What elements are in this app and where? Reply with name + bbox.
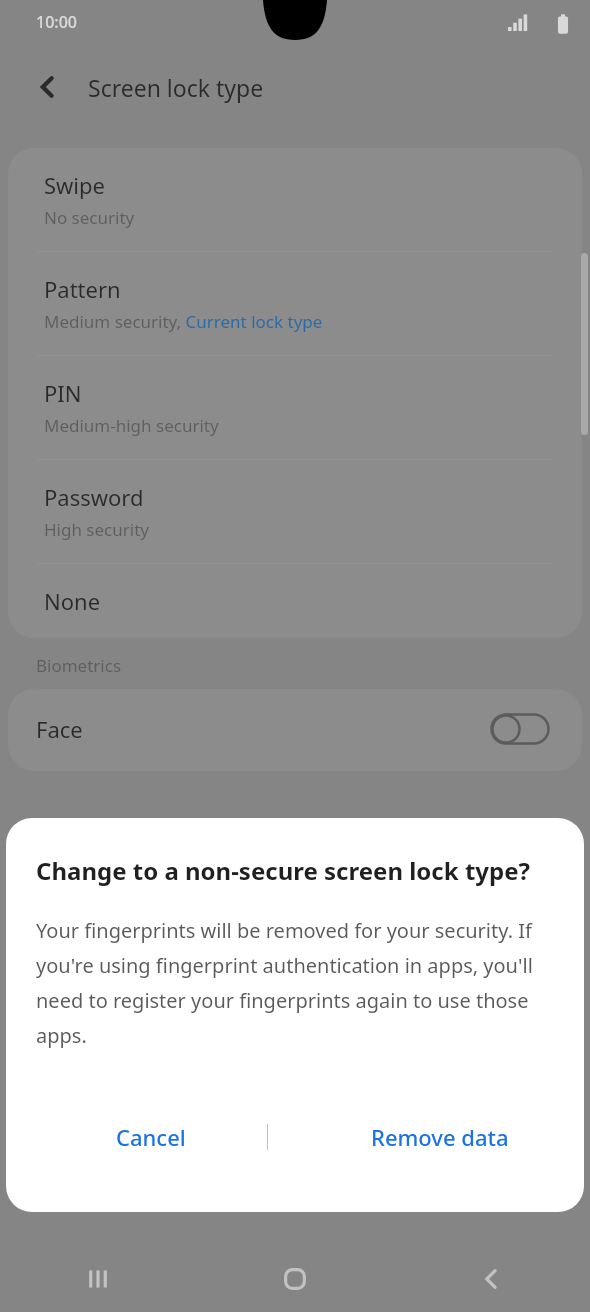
- button[interactable]: Pattern: [8, 252, 582, 356]
- button[interactable]: Face: [8, 689, 582, 771]
- button[interactable]: Recent apps: [0, 1246, 196, 1312]
- staticText: Remove data: [371, 1122, 509, 1152]
- staticText: High security: [44, 518, 149, 541]
- staticText: 10:00: [36, 11, 77, 33]
- button[interactable]: Password: [8, 460, 582, 564]
- button[interactable]: Remove data: [295, 1092, 584, 1182]
- button[interactable]: PIN: [8, 356, 582, 460]
- staticText: No security: [44, 206, 135, 229]
- button[interactable]: Cancel: [6, 1092, 295, 1182]
- button[interactable]: Back: [24, 63, 72, 111]
- button[interactable]: Home: [196, 1246, 393, 1312]
- staticText: Medium security, Current lock type: [44, 310, 323, 333]
- staticText: Medium-high security: [44, 414, 219, 437]
- staticText: Swipe: [44, 170, 105, 200]
- button[interactable]: Swipe: [8, 148, 582, 252]
- staticText: Password: [44, 482, 144, 512]
- button[interactable]: None: [8, 564, 582, 638]
- staticText: PIN: [44, 378, 82, 408]
- staticText: None: [44, 586, 101, 616]
- staticText: Change to a non-secure screen lock type?: [36, 854, 530, 887]
- button[interactable]: Back: [393, 1246, 590, 1312]
- staticText: Pattern: [44, 274, 121, 304]
- staticText: Screen lock type: [88, 72, 264, 103]
- staticText: Face: [36, 714, 83, 744]
- staticText: Your fingerprints will be removed for yo…: [36, 917, 554, 1049]
- staticText: Biometrics: [36, 654, 122, 677]
- staticText: Cancel: [116, 1122, 186, 1152]
